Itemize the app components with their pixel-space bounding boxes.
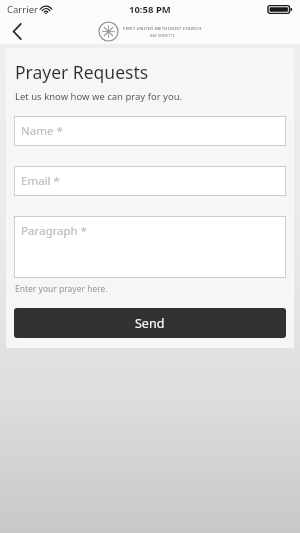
staticText: Email * bbox=[21, 173, 60, 189]
button[interactable]: Email * bbox=[14, 166, 286, 196]
button[interactable]: Back bbox=[0, 18, 34, 44]
staticText: Paragraph * bbox=[21, 223, 87, 239]
button[interactable]: Send bbox=[14, 308, 286, 338]
staticText: BAY MINETTE bbox=[150, 33, 175, 38]
staticText: FIRST UNITED METHODIST CHURCH bbox=[123, 26, 202, 32]
staticText: Prayer Requests bbox=[15, 60, 149, 84]
button[interactable]: Name * bbox=[14, 116, 286, 146]
button[interactable]: Paragraph * bbox=[14, 216, 286, 278]
staticText: 10:58 PM bbox=[129, 3, 171, 16]
staticText: Carrier bbox=[7, 3, 38, 16]
staticText: Name * bbox=[21, 123, 63, 139]
staticText: Send bbox=[135, 315, 165, 332]
staticText: Enter your prayer here. bbox=[15, 283, 108, 295]
staticText: Let us know how we can pray for you. bbox=[15, 90, 183, 103]
